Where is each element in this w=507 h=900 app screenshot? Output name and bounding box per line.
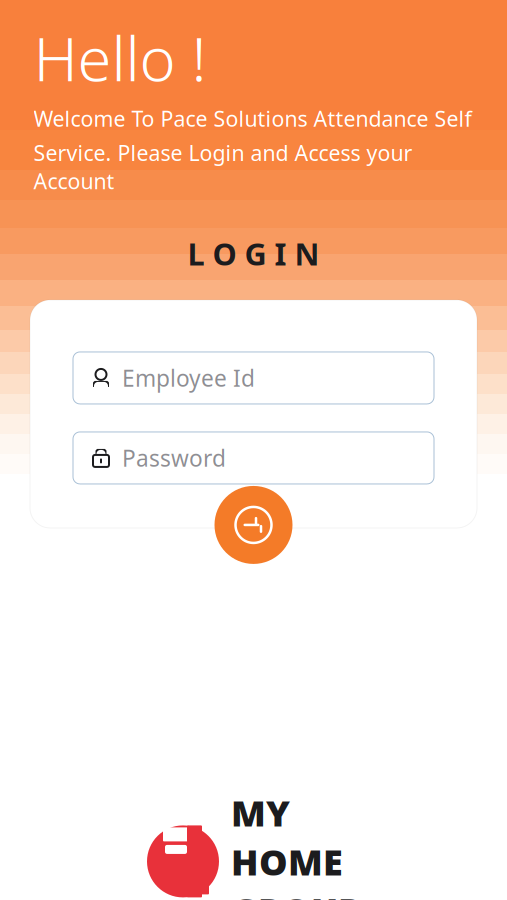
staticText: MY — [231, 789, 290, 836]
button[interactable]: Employee Id — [73, 352, 434, 404]
staticText: Hello ! — [33, 17, 206, 98]
staticText: Password — [122, 443, 226, 473]
staticText: L O G I N — [187, 233, 319, 274]
button[interactable]: Sign in — [214, 486, 292, 564]
staticText: GROUP — [231, 886, 361, 900]
staticText: Employee Id — [122, 363, 255, 393]
button[interactable]: Password — [73, 432, 434, 484]
staticText: Welcome To Pace Solutions Attendance Sel… — [33, 104, 471, 132]
staticText: HOME — [231, 837, 343, 885]
staticText: Service. Please Login and Access your Ac… — [33, 139, 412, 195]
